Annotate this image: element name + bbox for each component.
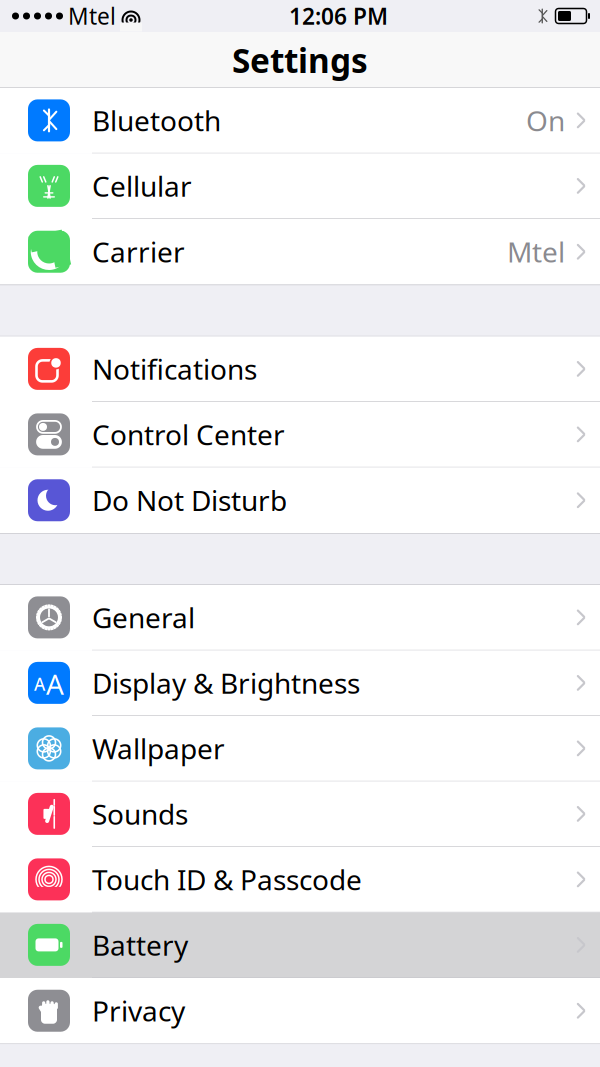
staticText: Wallpaper: [92, 730, 225, 767]
staticText: A: [46, 665, 64, 702]
button[interactable]: Notifications: [0, 336, 600, 402]
staticText: A: [34, 672, 45, 695]
staticText: Do Not Disturb: [92, 482, 287, 519]
button[interactable]: Privacy: [0, 978, 600, 1043]
staticText: Carrier: [92, 233, 185, 270]
button[interactable]: Sounds: [0, 781, 600, 847]
button[interactable]: Wallpaper: [0, 716, 600, 781]
button[interactable]: Control Center: [0, 402, 600, 467]
button[interactable]: Do Not Disturb: [0, 467, 600, 533]
staticText: Control Center: [92, 416, 285, 453]
button[interactable]: General: [0, 585, 600, 650]
button[interactable]: Touch ID & Passcode: [0, 847, 600, 912]
staticText: Cellular: [92, 167, 192, 204]
staticText: Mtel: [68, 1, 116, 31]
staticText: Display & Brightness: [92, 664, 360, 701]
staticText: Notifications: [92, 350, 257, 387]
button[interactable]: Carrier: [0, 219, 600, 284]
staticText: Sounds: [92, 795, 188, 832]
button[interactable]: A: [0, 650, 600, 716]
button[interactable]: Cellular: [0, 153, 600, 219]
staticText: Battery: [92, 926, 188, 963]
button[interactable]: Bluetooth: [0, 88, 600, 153]
staticText: Settings: [232, 38, 368, 82]
staticText: Touch ID & Passcode: [92, 861, 362, 898]
staticText: General: [92, 599, 195, 636]
staticText: On: [526, 102, 565, 139]
staticText: Privacy: [92, 992, 185, 1029]
staticText: Bluetooth: [92, 102, 221, 139]
staticText: 12:06 PM: [289, 1, 388, 31]
button[interactable]: Battery: [0, 912, 600, 978]
staticText: Mtel: [507, 233, 565, 270]
